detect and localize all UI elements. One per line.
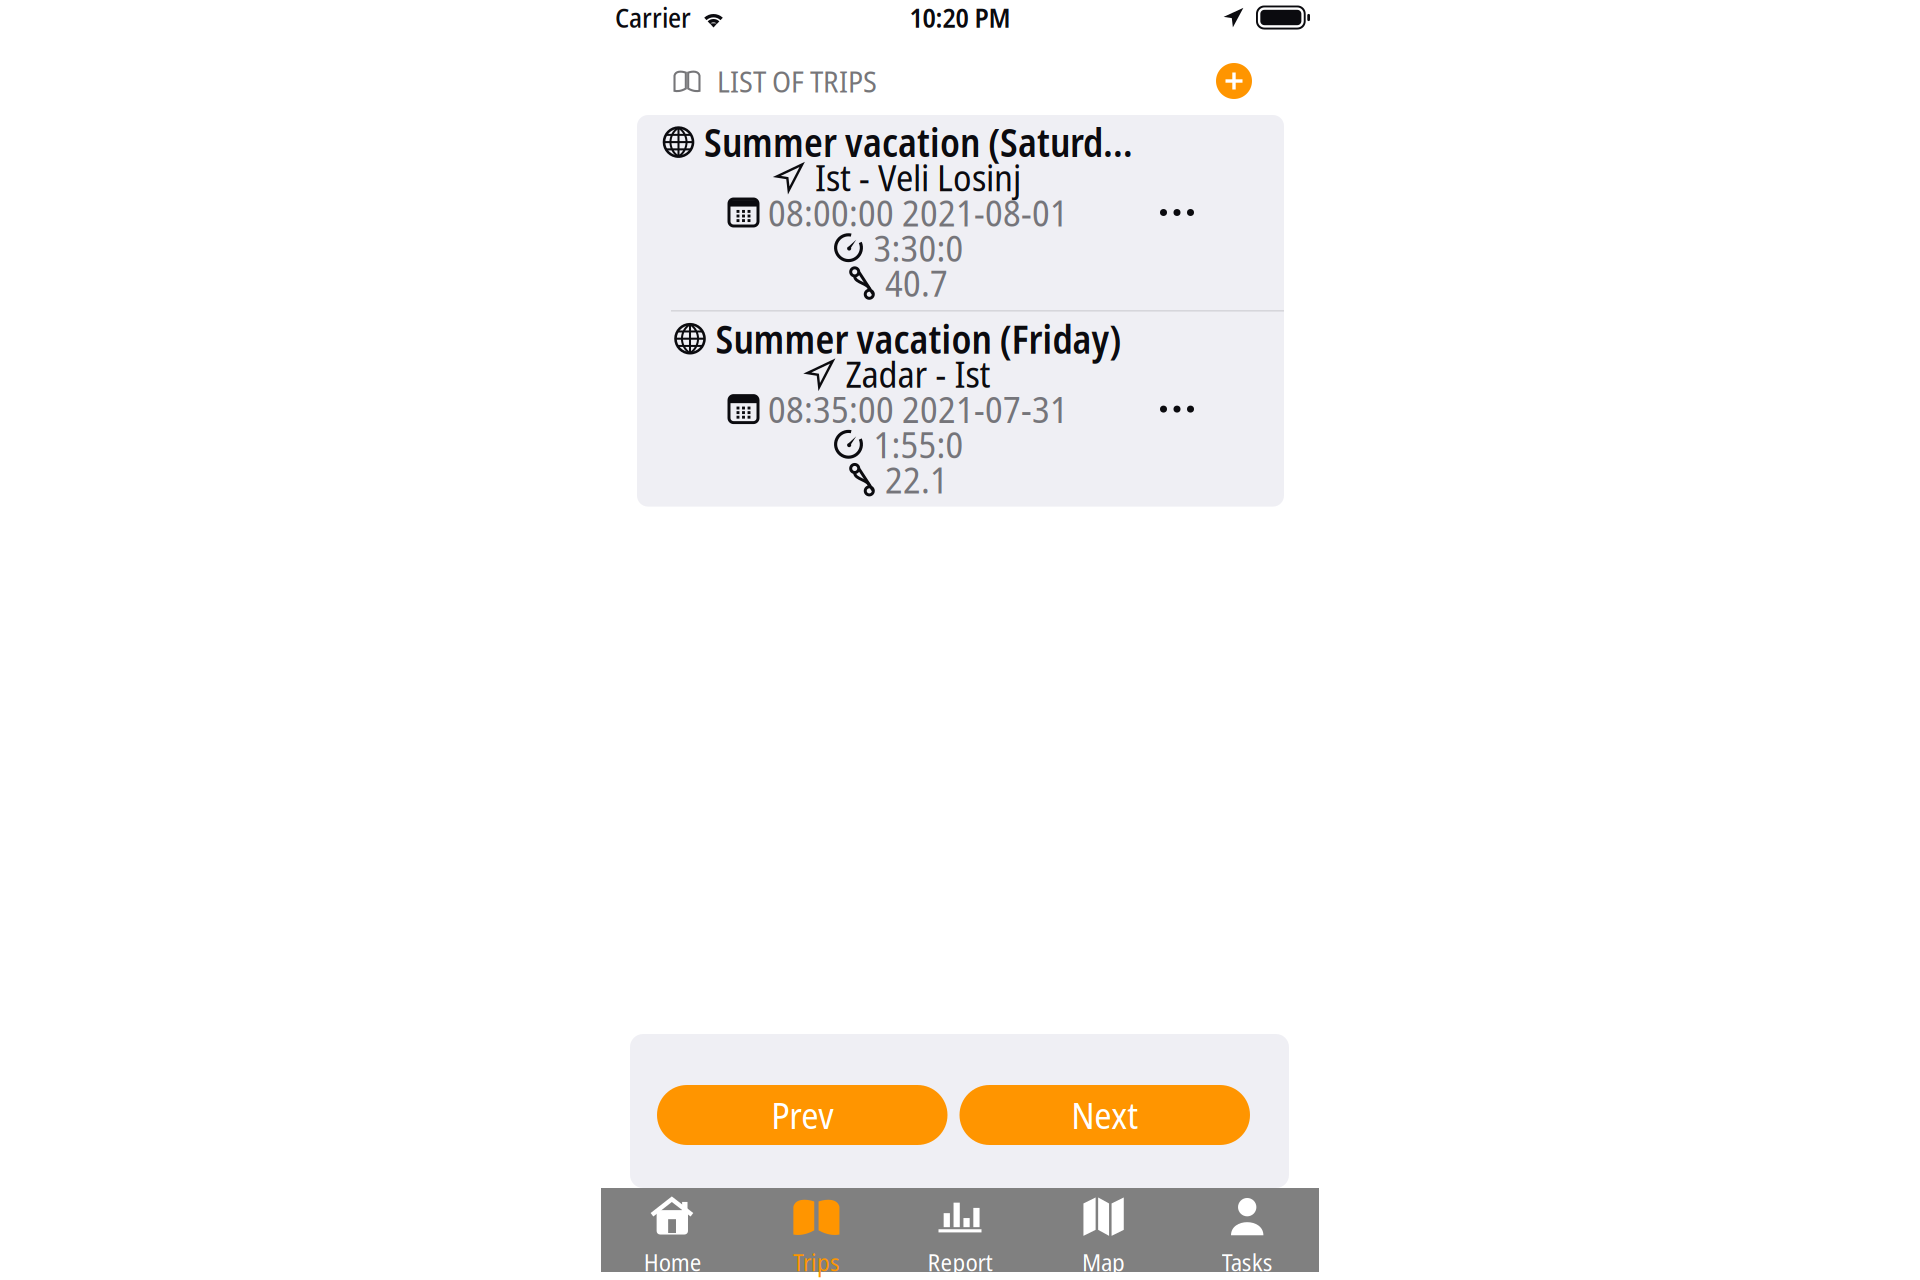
- staticText: Ist - Veli Losinj: [815, 153, 1021, 202]
- staticText: Tasks: [1222, 1246, 1273, 1278]
- staticText: Zadar - Ist: [845, 349, 990, 398]
- button[interactable]: Trips: [745, 1188, 888, 1272]
- button[interactable]: Prev: [657, 1085, 947, 1145]
- staticText: Trips: [793, 1246, 840, 1278]
- button[interactable]: More options: [1160, 115, 1194, 310]
- staticText: Map: [1082, 1246, 1125, 1278]
- button[interactable]: Next: [959, 1085, 1250, 1145]
- button[interactable]: More options: [1160, 312, 1194, 507]
- button[interactable]: Tasks: [1175, 1188, 1319, 1272]
- staticText: 22.1: [885, 455, 948, 504]
- button[interactable]: Home: [601, 1188, 745, 1272]
- staticText: 3:30:0: [873, 223, 963, 272]
- button[interactable]: Add trip: [1212, 59, 1256, 103]
- staticText: 10:20 PM: [909, 0, 1010, 36]
- staticText: LIST OF TRIPS: [717, 61, 877, 101]
- staticText: 08:35:00 2021-07-31: [768, 385, 1068, 434]
- staticText: Home: [644, 1246, 702, 1278]
- button[interactable]: Map: [1032, 1188, 1175, 1272]
- staticText: Prev: [771, 1090, 833, 1139]
- button[interactable]: Report: [888, 1188, 1032, 1272]
- staticText: Summer vacation (Friday): [715, 312, 1121, 365]
- staticText: Report: [927, 1246, 992, 1278]
- staticText: 40.7: [885, 258, 948, 307]
- staticText: Summer vacation (Saturd…: [704, 116, 1133, 168]
- staticText: Carrier: [615, 0, 691, 36]
- staticText: Next: [1071, 1090, 1138, 1139]
- staticText: 08:00:00 2021-08-01: [768, 188, 1068, 237]
- staticText: 1:55:0: [873, 420, 963, 469]
